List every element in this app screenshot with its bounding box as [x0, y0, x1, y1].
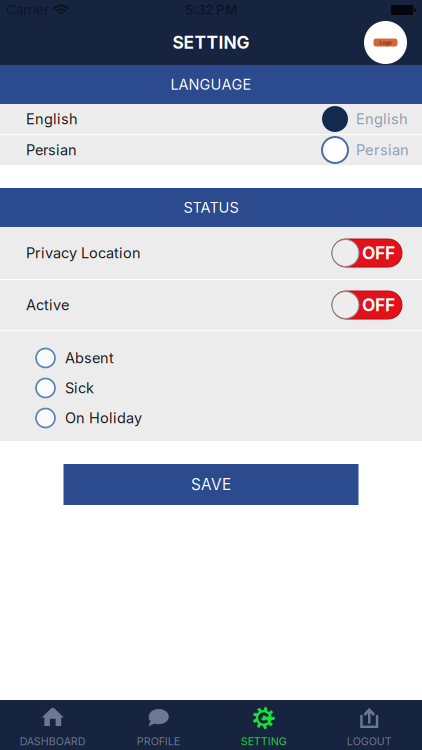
staticText: English — [356, 110, 408, 128]
staticText: STATUS — [183, 199, 238, 216]
staticText: SETTING — [241, 735, 287, 748]
button[interactable]: Persian — [0, 135, 422, 165]
button[interactable]: Sick — [0, 373, 422, 403]
staticText: SETTING — [172, 32, 249, 53]
staticText: On Holiday — [65, 409, 142, 427]
staticText: Carrier — [6, 2, 49, 18]
staticText: Absent — [65, 349, 114, 367]
button[interactable]: SAVE — [63, 464, 358, 505]
staticText: Sick — [65, 379, 94, 397]
staticText: Privacy Location — [26, 244, 141, 262]
staticText: DASHBOARD — [20, 735, 86, 748]
staticText: Logo — [379, 39, 391, 46]
button[interactable]: Account — [362, 20, 409, 65]
staticText: English — [26, 110, 78, 128]
staticText: LOGOUT — [347, 735, 392, 748]
staticText: OFF — [362, 242, 395, 263]
staticText: OFF — [362, 294, 395, 315]
button[interactable]: LOGOUT — [316, 700, 422, 750]
button[interactable]: Privacy Location — [0, 227, 422, 279]
button[interactable]: Absent — [0, 343, 422, 373]
staticText: LANGUAGE — [170, 76, 251, 93]
staticText: SAVE — [191, 475, 231, 494]
staticText: PROFILE — [137, 735, 180, 748]
staticText: 5:32 PM — [185, 2, 237, 18]
button[interactable]: English — [0, 104, 422, 134]
button[interactable]: SETTING — [211, 700, 316, 750]
staticText: Persian — [356, 141, 409, 159]
staticText: Active — [26, 296, 69, 314]
staticText: Persian — [26, 141, 77, 159]
button[interactable]: On Holiday — [0, 403, 422, 433]
button[interactable]: Active — [0, 280, 422, 330]
button[interactable]: DASHBOARD — [0, 700, 105, 750]
button[interactable]: PROFILE — [105, 700, 211, 750]
